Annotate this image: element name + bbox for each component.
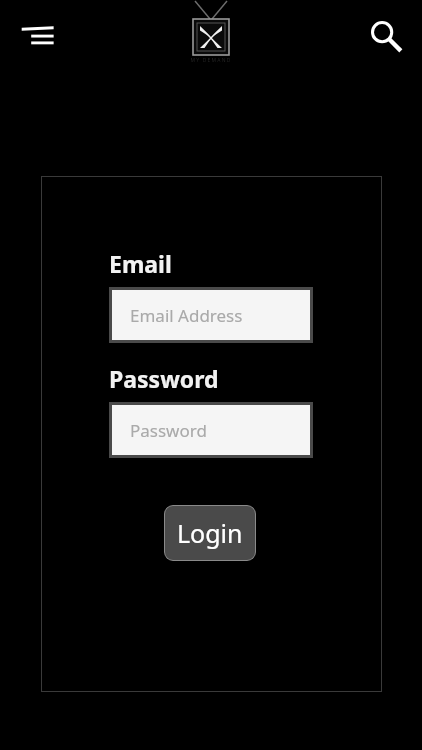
button[interactable]: Password input: [112, 405, 310, 455]
staticText: Password: [109, 363, 219, 394]
staticText: Login: [177, 516, 243, 550]
button[interactable]: Logo: [181, 0, 241, 66]
staticText: Email: [109, 248, 172, 279]
button[interactable]: Email Address input: [112, 290, 310, 340]
button[interactable]: Menu: [14, 12, 62, 60]
staticText: Password: [130, 419, 207, 442]
button[interactable]: Search: [362, 13, 408, 59]
button[interactable]: Login: [164, 505, 256, 561]
staticText: MY DEMAND: [181, 57, 241, 64]
staticText: Email Address: [130, 304, 243, 327]
